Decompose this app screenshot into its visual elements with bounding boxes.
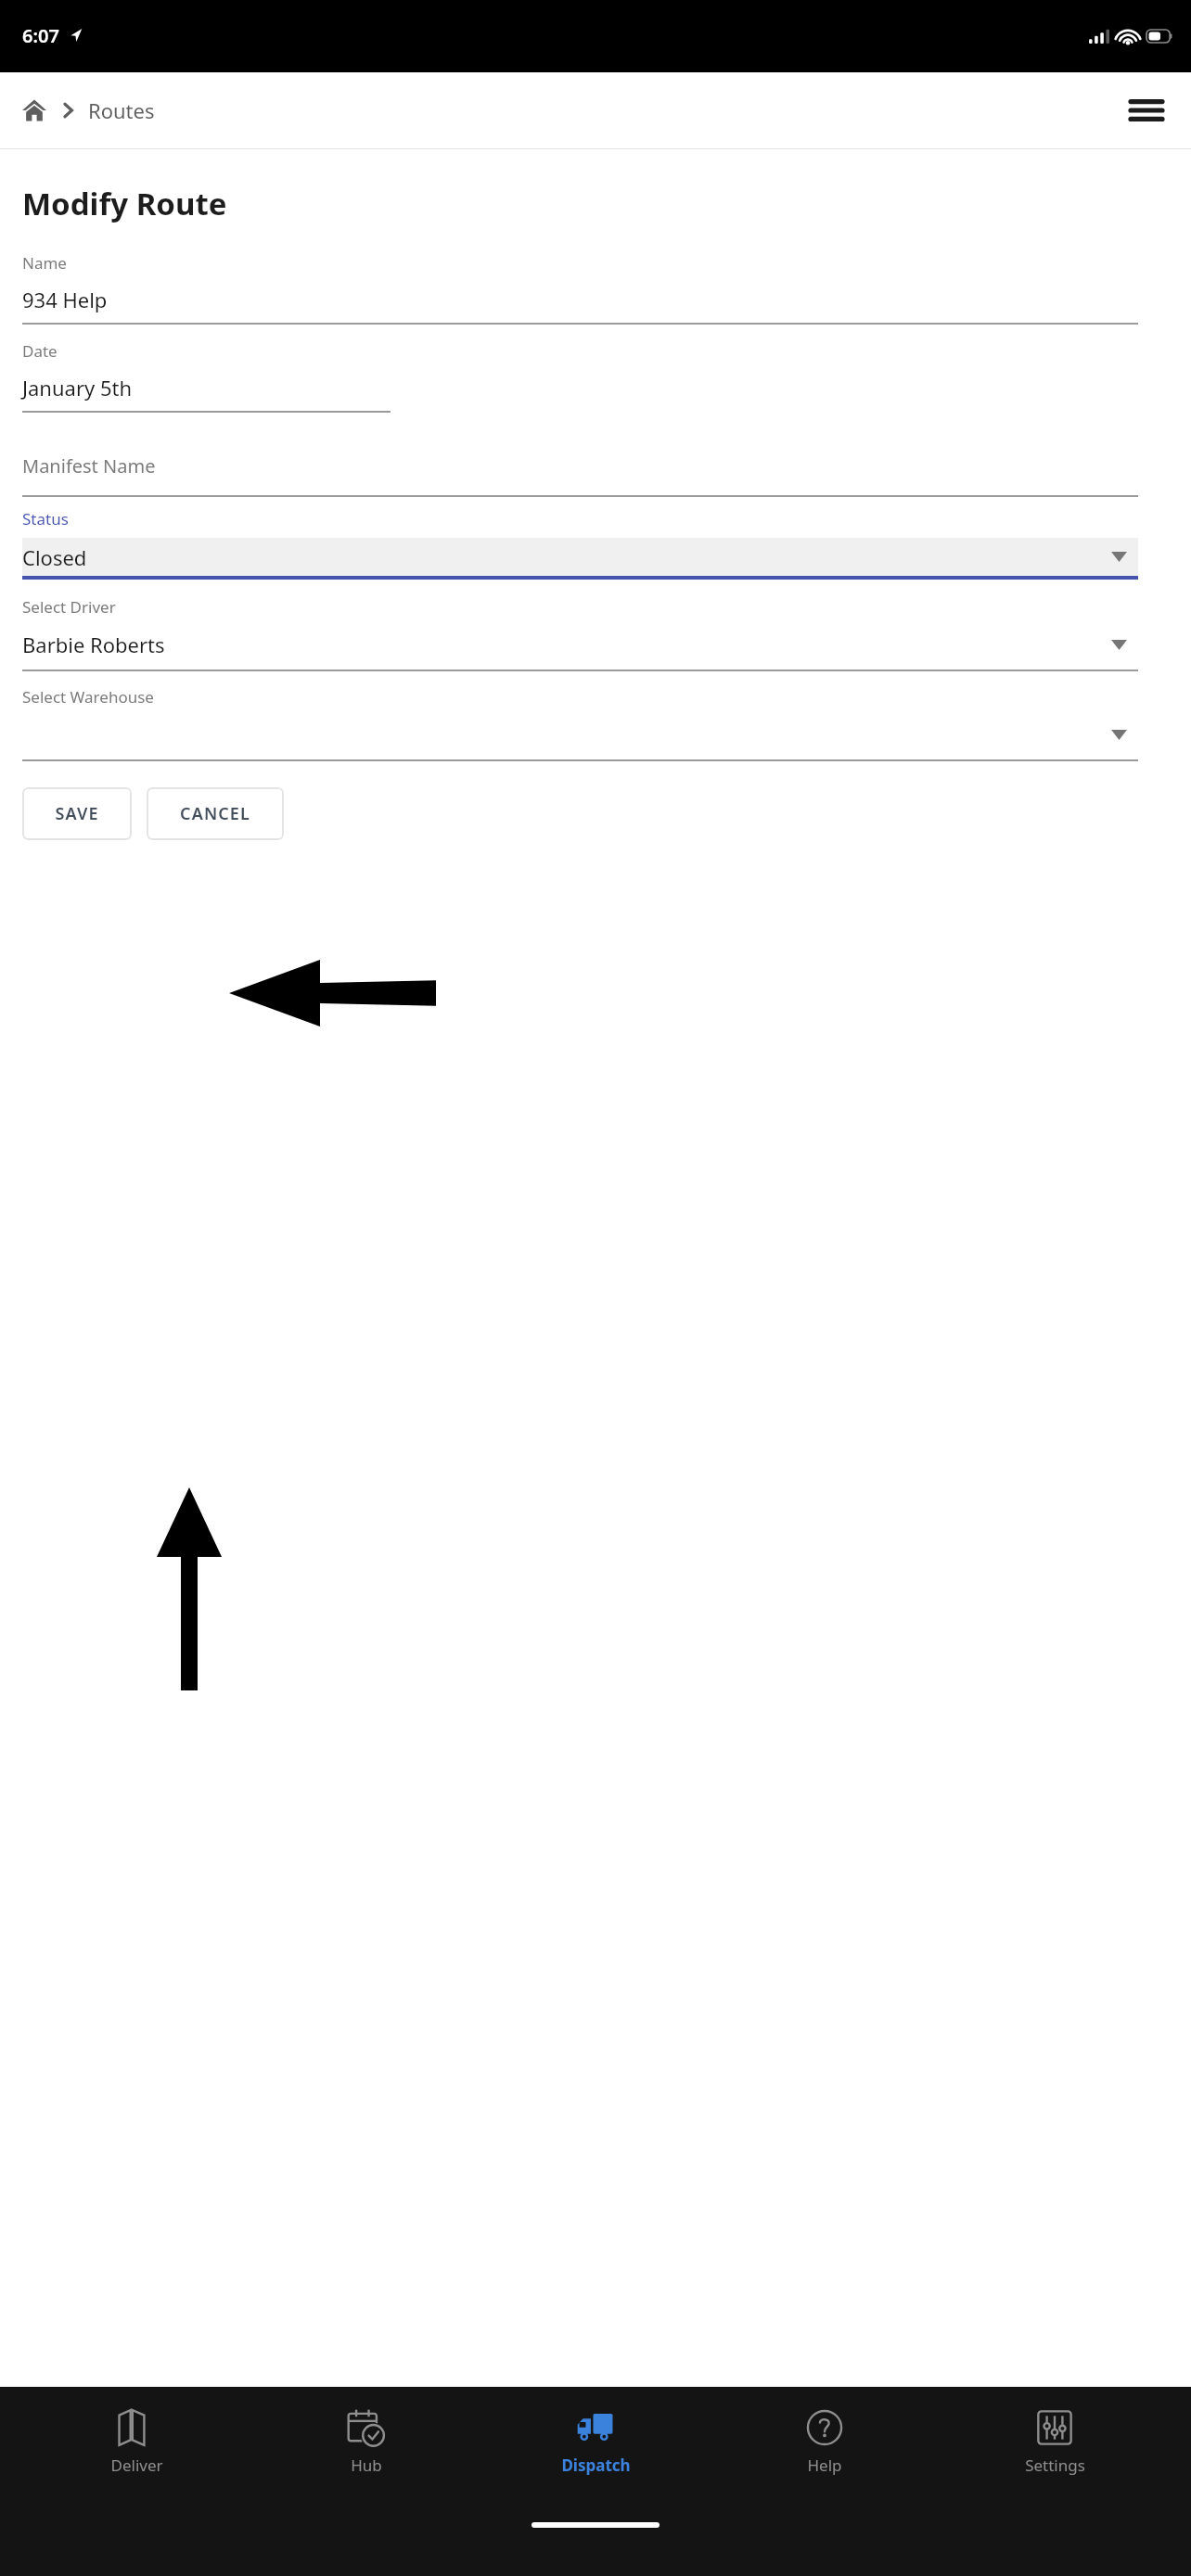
button[interactable]: Settings — [962, 2408, 1147, 2476]
staticText: Dispatch — [561, 2455, 631, 2476]
staticText: January 5th — [22, 374, 133, 402]
staticText: Manifest Name — [22, 453, 156, 478]
staticText: 934 Help — [22, 286, 108, 313]
staticText: Settings — [1025, 2455, 1085, 2476]
staticText: Hub — [351, 2455, 382, 2476]
button[interactable]: Select Driver — [0, 596, 1191, 671]
staticText: Help — [807, 2455, 842, 2476]
staticText: Select Driver — [22, 596, 116, 618]
button[interactable]: Status — [0, 508, 1191, 580]
staticText: Name — [22, 252, 67, 274]
staticText: Date — [22, 340, 58, 362]
button[interactable]: Name — [0, 252, 1191, 325]
staticText: Routes — [88, 96, 155, 124]
staticText: Modify Route — [22, 183, 227, 224]
button[interactable]: Select Warehouse — [0, 686, 1191, 761]
other: Home — [22, 98, 46, 122]
button[interactable]: Menu — [1122, 86, 1171, 134]
button[interactable]: Deliver — [44, 2408, 229, 2476]
button[interactable]: Manifest Name — [0, 442, 1191, 497]
staticText: SAVE — [55, 802, 99, 825]
staticText: CANCEL — [180, 802, 250, 825]
button[interactable]: Date — [0, 340, 1191, 413]
staticText: Status — [22, 508, 69, 529]
button[interactable]: Help — [732, 2408, 917, 2476]
staticText: Select Warehouse — [22, 686, 154, 708]
staticText: Barbie Roberts — [22, 631, 165, 658]
button[interactable]: Hub — [274, 2408, 459, 2476]
staticText: Closed — [22, 543, 87, 571]
button[interactable]: Home — [22, 96, 155, 124]
button[interactable]: SAVE — [22, 787, 132, 840]
button[interactable]: CANCEL — [147, 787, 284, 840]
staticText: 6:07 — [22, 23, 59, 48]
button[interactable]: Dispatch — [503, 2408, 688, 2476]
staticText: Deliver — [110, 2455, 163, 2476]
